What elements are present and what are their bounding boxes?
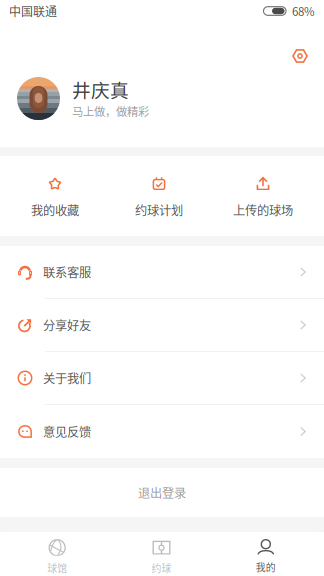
staticText: 约球 bbox=[151, 561, 171, 575]
staticText: 联系客服 bbox=[43, 263, 91, 281]
button[interactable]: 分享好友 bbox=[0, 299, 324, 352]
staticText: 关于我们 bbox=[43, 369, 91, 387]
button[interactable]: 关于我们 bbox=[0, 352, 324, 405]
staticText: 球馆 bbox=[47, 561, 67, 575]
button[interactable]: 上传的球场 bbox=[211, 156, 315, 236]
staticText: 68% bbox=[292, 3, 315, 19]
button[interactable]: 意见反馈 bbox=[0, 405, 324, 458]
button[interactable]: 我的收藏 bbox=[3, 156, 107, 236]
staticText: 我的收藏 bbox=[31, 201, 79, 219]
staticText: 退出登录 bbox=[138, 484, 186, 501]
staticText: 意见反馈 bbox=[43, 423, 91, 440]
button[interactable]: 设置 bbox=[293, 24, 324, 63]
button[interactable]: 球馆 bbox=[5, 532, 109, 576]
button[interactable]: 联系客服 bbox=[0, 246, 324, 299]
button[interactable]: 约球计划 bbox=[107, 156, 211, 236]
staticText: 约球计划 bbox=[135, 201, 183, 219]
staticText: 分享好友 bbox=[43, 316, 91, 334]
staticText: 上传的球场 bbox=[233, 201, 293, 219]
staticText: 我的 bbox=[256, 560, 276, 574]
staticText: 井庆真 bbox=[72, 76, 129, 103]
button[interactable]: 退出登录 bbox=[0, 468, 324, 517]
staticText: 中国联通 bbox=[9, 2, 57, 20]
button[interactable]: 约球 bbox=[109, 532, 214, 576]
staticText: 马上做，做精彩 bbox=[72, 103, 149, 119]
button[interactable]: 我的 bbox=[214, 532, 318, 576]
